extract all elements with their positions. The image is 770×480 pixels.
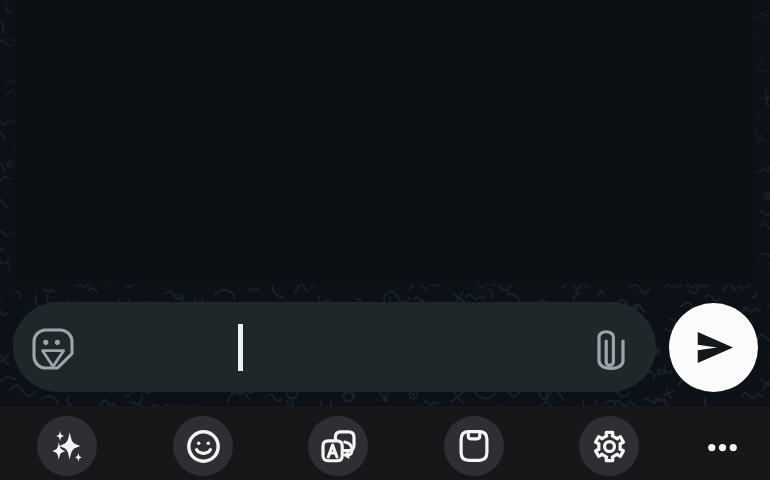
- button[interactable]: Emoji: [173, 416, 233, 476]
- button[interactable]: Settings: [579, 416, 639, 476]
- button[interactable]: Meta AI: [37, 416, 97, 476]
- button[interactable]: Stickers: [13, 302, 656, 392]
- button[interactable]: Send: [669, 303, 758, 392]
- button[interactable]: More options: [696, 420, 748, 472]
- button[interactable]: Attach: [588, 324, 634, 370]
- button[interactable]: Stickers: [31, 324, 77, 370]
- button[interactable]: Translate: [308, 416, 368, 476]
- button[interactable]: Clipboard: [444, 416, 504, 476]
